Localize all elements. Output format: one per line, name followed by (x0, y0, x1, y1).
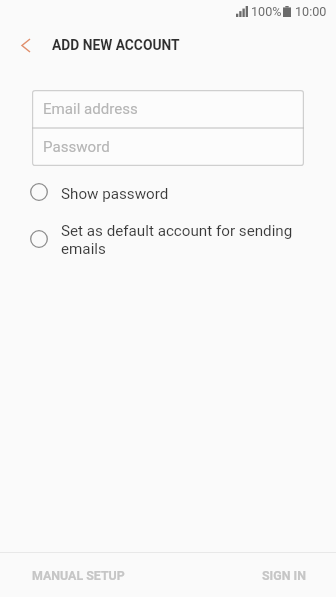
button[interactable]: Set as default account for sending email… (0, 203, 336, 258)
staticText: 10:00 (295, 4, 327, 19)
button[interactable]: Navigate up (8, 27, 42, 61)
staticText: Set as default account for sending email… (61, 222, 300, 258)
staticText: MANUAL SETUP (32, 568, 125, 583)
button[interactable]: SIGN IN (168, 553, 336, 597)
staticText: Email address (43, 100, 138, 118)
staticText: Show password (61, 185, 169, 203)
button[interactable]: Password (32, 128, 304, 166)
staticText: SIGN IN (262, 568, 306, 583)
button[interactable]: Email address (32, 90, 304, 128)
button[interactable]: MANUAL SETUP (0, 553, 168, 597)
staticText: ADD NEW ACCOUNT (52, 37, 180, 53)
button[interactable]: Show password (0, 166, 336, 203)
staticText: Password (43, 138, 110, 156)
staticText: 100% (251, 4, 282, 19)
